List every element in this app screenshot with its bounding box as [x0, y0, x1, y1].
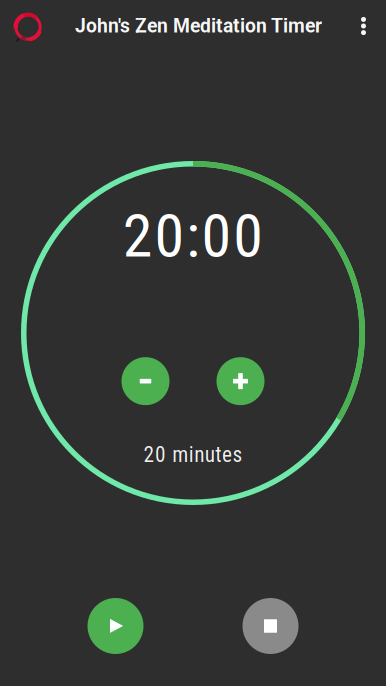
staticText: 20:00 [123, 201, 263, 271]
button[interactable]: Stop [242, 598, 298, 654]
button[interactable]: Start [87, 598, 143, 654]
button[interactable]: Decrease duration [121, 357, 169, 405]
staticText: 20 minutes [143, 442, 242, 467]
staticText: John's Zen Meditation Timer [75, 15, 322, 37]
button[interactable]: More options [341, 0, 386, 52]
button[interactable]: Increase duration [216, 357, 264, 405]
